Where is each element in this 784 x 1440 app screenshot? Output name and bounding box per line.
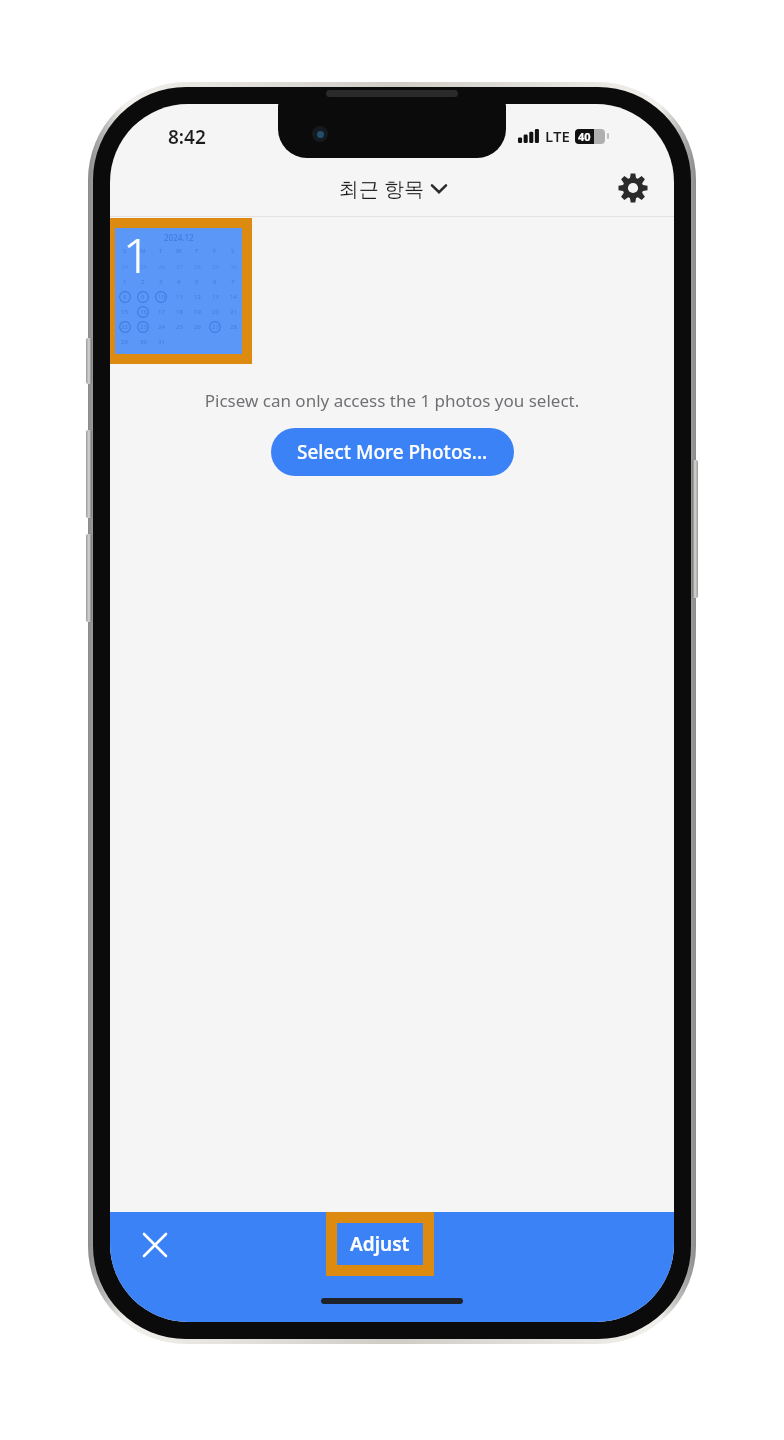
staticText: 14 (230, 293, 237, 301)
staticText: 28 (230, 323, 237, 331)
staticText: LTE (545, 126, 570, 146)
staticText: 21 (230, 308, 237, 316)
staticText: 4 (177, 278, 181, 286)
button[interactable]: Select More Photos... (271, 428, 514, 476)
staticText: 5 (195, 278, 199, 286)
staticText: 20 (212, 308, 219, 316)
staticText: 15 (121, 308, 128, 316)
staticText: 25 (140, 263, 147, 271)
staticText: T (195, 247, 199, 255)
button[interactable]: Close (132, 1222, 178, 1268)
staticText: 31 (158, 338, 165, 346)
staticText: 26 (158, 263, 165, 271)
button[interactable]: Settings (610, 165, 656, 211)
staticText: 24 (158, 323, 165, 331)
staticText: 25 (176, 323, 183, 331)
staticText: F (213, 247, 217, 255)
staticText: W (176, 247, 182, 255)
staticText: 27 (176, 263, 183, 271)
staticText: Select More Photos... (297, 439, 488, 465)
staticText: T (159, 247, 163, 255)
staticText: 1 (123, 278, 127, 286)
staticText: Adjust (350, 1231, 410, 1257)
staticText: 2024.12 (164, 232, 194, 243)
staticText: 최근 항목 (339, 175, 425, 202)
staticText: 2 (141, 278, 145, 286)
staticText: 13 (212, 293, 219, 301)
staticText: 29 (212, 263, 219, 271)
staticText: 17 (158, 308, 165, 316)
staticText: 7 (231, 278, 235, 286)
staticText: 1 (123, 222, 151, 287)
staticText: 10 (158, 293, 165, 301)
staticText: 18 (176, 308, 183, 316)
staticText: S (231, 247, 235, 255)
staticText: 27 (212, 323, 219, 331)
staticText: 24 (121, 263, 128, 271)
staticText: 28 (194, 263, 201, 271)
staticText: 23 (140, 323, 147, 331)
staticText: 30 (230, 263, 237, 271)
staticText: 11 (176, 293, 183, 301)
staticText: S (123, 247, 127, 255)
staticText: 29 (121, 338, 128, 346)
staticText: 8:42 (168, 124, 206, 150)
button[interactable]: 최근 항목 (331, 171, 454, 206)
staticText: 9 (141, 293, 145, 301)
staticText: 40 (578, 129, 591, 144)
staticText: 19 (194, 308, 201, 316)
button[interactable]: Adjust (337, 1223, 423, 1265)
staticText: 3 (159, 278, 163, 286)
staticText: 6 (213, 278, 217, 286)
staticText: 22 (121, 323, 128, 331)
staticText: 12 (194, 293, 201, 301)
button[interactable]: Selected photo (115, 228, 242, 354)
staticText: Picsew can only access the 1 photos you … (126, 389, 658, 412)
staticText: 16 (140, 308, 147, 316)
staticText: 30 (140, 338, 147, 346)
staticText: 8 (123, 293, 127, 301)
staticText: M (140, 247, 146, 255)
staticText: 26 (194, 323, 201, 331)
